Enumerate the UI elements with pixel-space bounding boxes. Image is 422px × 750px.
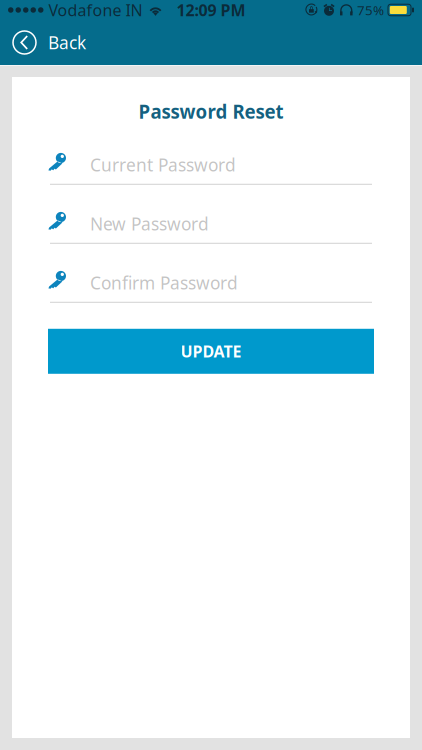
staticText: New Password xyxy=(90,212,209,235)
button[interactable]: New Password xyxy=(48,210,372,244)
staticText: 12:09 PM xyxy=(176,0,245,21)
staticText: Vodafone IN xyxy=(48,0,142,21)
staticText: Confirm Password xyxy=(90,271,238,294)
staticText: UPDATE xyxy=(180,341,241,362)
staticText: Password Reset xyxy=(138,99,283,124)
button[interactable]: Current Password xyxy=(48,151,372,185)
button[interactable]: UPDATE xyxy=(48,329,374,374)
button[interactable]: Back xyxy=(0,20,100,65)
button[interactable]: Confirm Password xyxy=(48,269,372,303)
staticText: Back xyxy=(48,31,86,54)
staticText: Current Password xyxy=(90,153,236,176)
staticText: 75% xyxy=(357,1,384,19)
